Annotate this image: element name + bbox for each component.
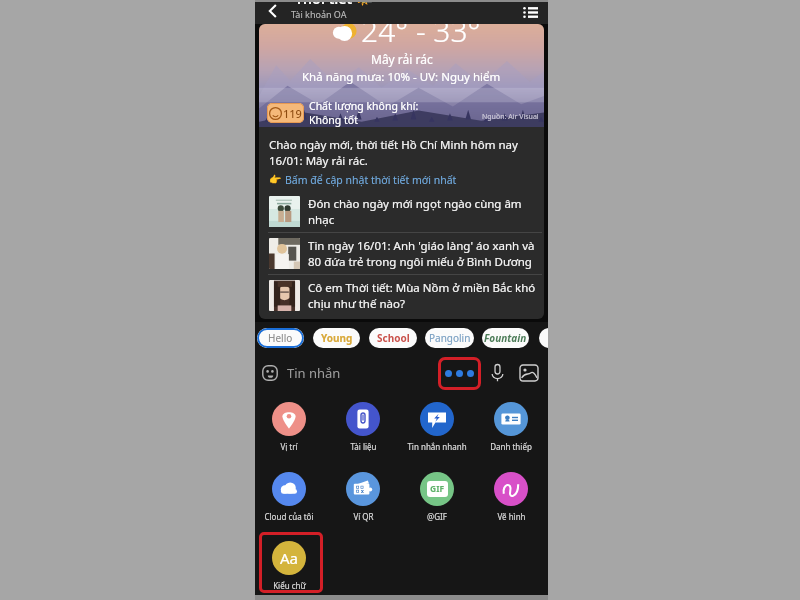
staticText: Thời tiết 🌤 bbox=[295, 0, 374, 8]
staticText: 24° - 33° bbox=[361, 24, 481, 51]
button[interactable]: Back bbox=[263, 1, 283, 21]
staticText: Tin nhắn bbox=[287, 364, 341, 382]
button[interactable]: Sticker bbox=[262, 365, 278, 381]
staticText: Pangolin bbox=[429, 331, 471, 345]
button[interactable]: Bấm để cập nhật thời tiết mới nhất bbox=[285, 173, 457, 187]
staticText: Bấm để cập nhật thời tiết mới nhất bbox=[285, 173, 457, 187]
button[interactable]: Tài liệu bbox=[327, 402, 399, 452]
staticText: Aa bbox=[280, 548, 299, 568]
staticText: Tài khoản OA bbox=[291, 8, 347, 20]
button[interactable]: Cloud của tôi bbox=[255, 472, 325, 522]
staticText: Chào ngày mới, thời tiết Hồ Chí Minh hôm… bbox=[269, 137, 536, 168]
button[interactable]: Danh thiếp bbox=[475, 402, 547, 452]
button[interactable]: Young bbox=[313, 328, 360, 348]
staticText: Không tốt bbox=[309, 113, 358, 127]
staticText: Tài liệu bbox=[350, 441, 377, 452]
staticText: Vị trí bbox=[280, 441, 298, 452]
staticText: Danh thiếp bbox=[490, 441, 532, 452]
staticText: Ví QR bbox=[353, 511, 374, 522]
staticText: Cô em Thời tiết: Mùa Nồm ở miền Bắc khó … bbox=[308, 280, 539, 311]
staticText: Mây rải rác bbox=[371, 51, 433, 67]
button[interactable]: Aa bbox=[255, 541, 325, 591]
button[interactable]: Ví QR bbox=[327, 472, 399, 522]
staticText: Fountain bbox=[484, 331, 527, 345]
button[interactable]: Pangolin bbox=[425, 328, 474, 348]
button[interactable]: Tin nhắn bbox=[283, 358, 433, 387]
staticText: Tin ngày 16/01: Anh 'giáo làng' áo xanh … bbox=[308, 238, 539, 269]
staticText: Cloud của tôi bbox=[264, 511, 314, 522]
button[interactable]: Hello bbox=[257, 328, 304, 348]
staticText: Khả năng mưa: 10% - UV: Nguy hiểm bbox=[302, 69, 501, 85]
button[interactable]: Voice message bbox=[488, 363, 507, 382]
button[interactable]: GIF bbox=[401, 472, 473, 522]
button[interactable]: Tin nhắn nhanh bbox=[401, 402, 473, 452]
staticText: Chất lượng không khí: bbox=[309, 99, 419, 113]
button[interactable]: More options bbox=[438, 357, 481, 390]
button[interactable]: Cô em Thời tiết: Mùa Nồm ở miền Bắc khó … bbox=[259, 275, 544, 316]
staticText: Vẽ hình bbox=[497, 511, 526, 522]
button[interactable]: Vẽ hình bbox=[475, 472, 547, 522]
staticText: @GIF bbox=[427, 511, 447, 522]
staticText: Đón chào ngày mới ngọt ngào cùng âm nhạc bbox=[308, 196, 539, 227]
staticText: 119 bbox=[283, 106, 302, 121]
staticText: Nguồn: Air Visual bbox=[482, 112, 539, 122]
staticText: Hello bbox=[268, 331, 293, 345]
button[interactable]: Menu bbox=[520, 2, 540, 22]
staticText: Young bbox=[321, 331, 353, 345]
button[interactable]: Gallery bbox=[519, 363, 539, 383]
staticText: Tin nhắn nhanh bbox=[407, 441, 467, 452]
staticText: Kiểu chữ bbox=[273, 580, 306, 591]
button[interactable]: Vị trí bbox=[255, 402, 325, 452]
button[interactable]: Đón chào ngày mới ngọt ngào cùng âm nhạc bbox=[259, 191, 544, 232]
button[interactable]: Tin ngày 16/01: Anh 'giáo làng' áo xanh … bbox=[259, 233, 544, 274]
staticText: School bbox=[377, 331, 410, 345]
staticText: 👉 bbox=[269, 174, 282, 186]
button[interactable]: Fountain bbox=[482, 328, 529, 348]
button[interactable]: Lo bbox=[539, 328, 548, 348]
button[interactable]: School bbox=[369, 328, 417, 348]
staticText: GIF bbox=[430, 483, 445, 495]
